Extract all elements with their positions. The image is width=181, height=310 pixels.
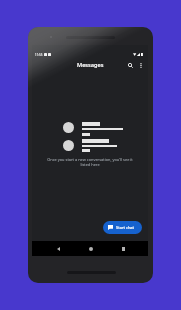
staticText: Messages — [77, 61, 104, 69]
staticText: Start chat — [116, 225, 135, 230]
button[interactable]: More options — [135, 59, 147, 71]
staticText: Once you start a new conversation, you'l… — [45, 157, 135, 168]
button[interactable]: Recents — [117, 243, 129, 255]
button[interactable]: Back — [52, 243, 64, 255]
button[interactable]: Start chat — [103, 221, 142, 234]
button[interactable]: Home — [85, 243, 97, 255]
staticText: 11:55 — [35, 53, 43, 57]
button[interactable]: Search — [124, 59, 136, 71]
